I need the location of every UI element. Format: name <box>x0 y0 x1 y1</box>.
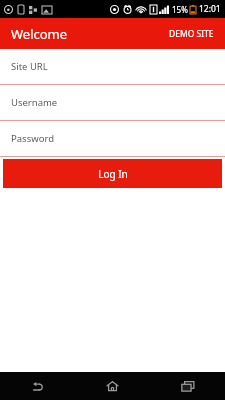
button[interactable]: DEMO SITE <box>158 22 225 46</box>
button[interactable]: Home <box>75 372 150 400</box>
button[interactable]: Recent apps <box>150 372 225 400</box>
button[interactable]: Back <box>0 372 75 400</box>
staticText: Username <box>11 96 58 109</box>
staticText: Log In <box>98 167 128 181</box>
staticText: DEMO SITE <box>169 28 214 40</box>
staticText: 12:01 <box>199 3 221 15</box>
button[interactable]: Username <box>0 85 225 121</box>
staticText: Site URL <box>11 60 48 73</box>
button[interactable]: Site URL <box>0 49 225 85</box>
staticText: 15% <box>172 4 188 15</box>
staticText: Welcome <box>11 25 68 43</box>
button[interactable]: Password <box>0 121 225 157</box>
button[interactable]: Log In <box>3 159 222 188</box>
staticText: Password <box>11 132 54 145</box>
